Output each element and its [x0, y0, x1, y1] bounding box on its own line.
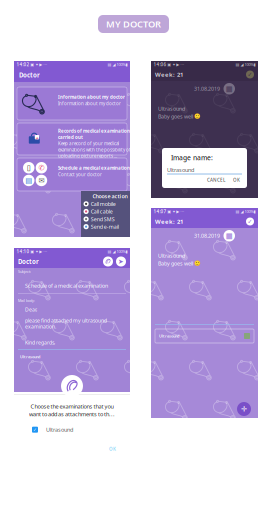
button[interactable]: Call cable [36, 162, 47, 173]
staticText: ▤ ◢ 100%▮ [107, 62, 127, 67]
button[interactable]: Call mobile [23, 162, 34, 173]
staticText: ▦ [226, 84, 233, 93]
staticText: Doctor [19, 71, 40, 79]
button[interactable]: Attach file [61, 375, 83, 397]
staticText: ✛ [241, 405, 247, 413]
staticText: ✉ [38, 176, 44, 185]
staticText: ▣ ✦ ▶ ⋯ [167, 209, 184, 214]
staticText: please find attached my ultrasound [25, 317, 107, 324]
staticText: want to add as attachments to th... [29, 410, 115, 418]
staticText: Ultrasound [20, 354, 40, 359]
staticText: Call cable [91, 208, 113, 215]
staticText: 31.08.2019 [194, 232, 220, 239]
staticText: Ultrasound [159, 333, 179, 339]
staticText: Week: 21 [155, 70, 183, 78]
staticText: Keep a record of your medical [58, 141, 119, 147]
staticText: Schedule of a medical examination [25, 282, 108, 289]
button[interactable]: Send e-mail [83, 223, 127, 230]
button[interactable]: Send SMS [23, 175, 34, 186]
staticText: Kind regards, [25, 339, 55, 346]
staticText: Ultrasound [158, 252, 185, 259]
button[interactable]: MY DOCTOR [98, 15, 169, 33]
staticText: Choose the examinations that you [30, 403, 113, 410]
staticText: Image name: [171, 153, 213, 162]
staticText: Schedule a medical examination ... [58, 165, 134, 171]
staticText: ▯ [27, 163, 31, 172]
staticText: 14:02 [16, 61, 29, 68]
staticText: Dear, [25, 306, 37, 313]
staticText: ▤ ◢ 100%▮ [235, 62, 255, 67]
button[interactable]: Information about my doctor [17, 87, 127, 120]
staticText: Ultrasound [46, 426, 73, 433]
staticText: ➤ [118, 258, 124, 265]
staticText: Mail body: [18, 298, 35, 303]
staticText: ▦ [226, 231, 233, 240]
staticText: Send SMS [91, 215, 115, 223]
staticText: Call mobile [91, 200, 116, 207]
staticText: Information about my doctor [58, 94, 125, 100]
staticText: Ultrasound [167, 166, 194, 174]
staticText: ✓ [247, 71, 252, 78]
staticText: + [35, 134, 38, 142]
staticText: ✓ [247, 218, 252, 225]
staticText: 31.08.2019 [194, 85, 220, 92]
button[interactable]: OK [233, 177, 240, 183]
button[interactable]: Add [237, 402, 251, 416]
staticText: ▣ ✦ ▶ ⋯ [30, 62, 47, 67]
staticText: Contact your doctor [58, 171, 102, 177]
button[interactable]: + [17, 123, 127, 155]
staticText: OK [109, 446, 116, 452]
staticText: CANCEL [207, 177, 225, 183]
button[interactable]: Send [116, 256, 126, 266]
staticText: Baby goes well 🙂 [158, 113, 201, 120]
button[interactable]: Ultrasound [155, 329, 254, 343]
staticText: carried out [58, 134, 83, 140]
staticText: Week: 21 [155, 217, 183, 225]
button[interactable]: Send SMS [83, 216, 127, 223]
staticText: ▤ ◢ 100%▮ [107, 249, 127, 254]
staticText: Send e-mail [91, 223, 119, 230]
staticText: 14:07 [153, 208, 166, 215]
staticText: Choose action [92, 192, 127, 200]
button[interactable]: Ultrasound selected [32, 427, 38, 433]
staticText: Records of medical examinations [58, 128, 132, 134]
staticText: uploading picture reports ... [58, 153, 117, 159]
button[interactable]: Attach [103, 256, 113, 266]
button[interactable]: Call cable [83, 208, 127, 215]
button[interactable]: ▯ [17, 158, 127, 191]
staticText: ✆ [38, 163, 44, 172]
staticText: OK [233, 177, 240, 183]
staticText: ✓ [33, 427, 37, 432]
staticText: ▣ ✦ ▶ ⋯ [30, 249, 47, 254]
staticText: Information about my doctor [58, 100, 121, 106]
staticText: examinations with the possibility of [58, 147, 131, 153]
button[interactable]: Choose date [223, 230, 235, 241]
staticText: ▤ [25, 176, 32, 185]
button[interactable]: CANCEL [207, 177, 225, 183]
button[interactable]: OK [109, 446, 116, 452]
staticText: MY DOCTOR [106, 18, 161, 30]
button[interactable]: Call mobile [83, 200, 127, 207]
staticText: 14:06 [153, 61, 166, 68]
staticText: Baby goes well 🙂 [158, 260, 201, 267]
button[interactable]: Send e-mail [36, 175, 47, 186]
staticText: 14:10 [16, 248, 29, 255]
staticText: Subject: [18, 269, 31, 274]
staticText: Ultrasound [158, 105, 185, 112]
staticText: ▤ ◢ 100%▮ [235, 209, 255, 214]
staticText: examination. [25, 323, 56, 330]
staticText: Doctor [18, 257, 39, 266]
staticText: ▣ ✦ ▶ ⋯ [167, 62, 184, 67]
button[interactable]: Save [246, 217, 254, 225]
